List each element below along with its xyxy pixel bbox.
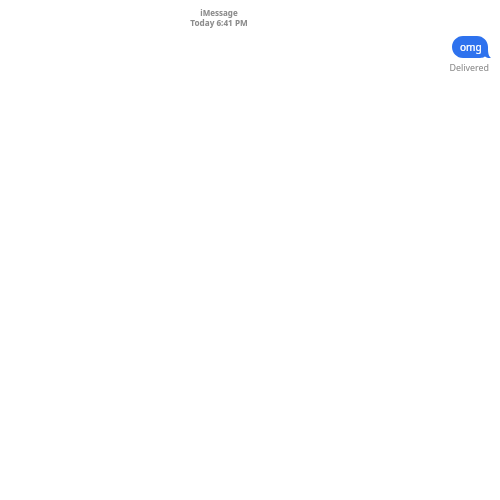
button[interactable]: omg xyxy=(452,36,492,60)
staticText: Today 6:41 PM xyxy=(119,17,319,28)
staticText: omg xyxy=(460,40,482,54)
staticText: Delivered xyxy=(400,61,489,73)
staticText: iMessage xyxy=(119,7,319,18)
